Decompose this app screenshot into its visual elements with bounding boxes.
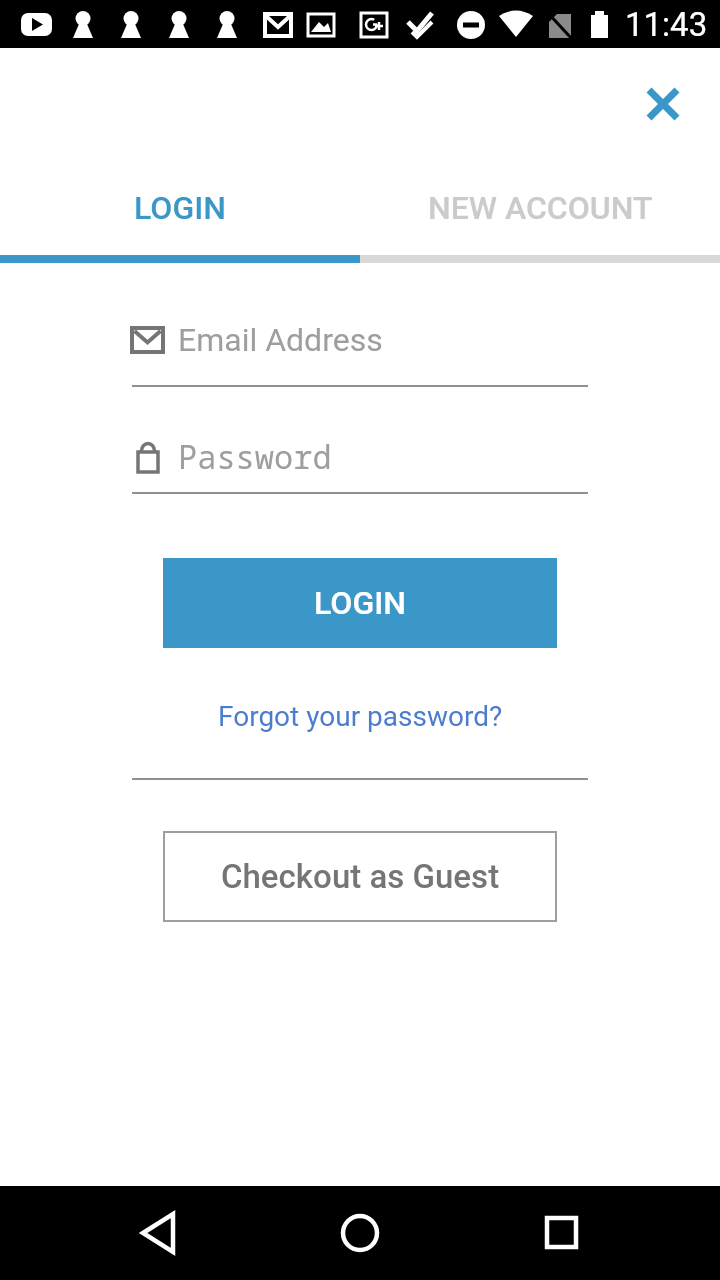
staticText: Email Address (178, 321, 383, 359)
staticText: Checkout as Guest (221, 857, 500, 896)
button[interactable] (310, 1193, 410, 1273)
button[interactable]: NEW ACCOUNT (360, 175, 720, 241)
staticText: Forgot your password? (218, 700, 503, 733)
staticText: LOGIN (314, 584, 406, 622)
button[interactable] (633, 74, 693, 134)
button[interactable]: Checkout as Guest (163, 831, 557, 922)
button[interactable]: LOGIN (0, 175, 360, 241)
staticText: 11:43 (625, 5, 708, 44)
button[interactable]: Email Address (132, 316, 588, 364)
button[interactable]: Password (132, 433, 588, 481)
staticText: LOGIN (134, 189, 226, 227)
button[interactable]: Forgot your password? (160, 694, 560, 738)
button[interactable] (512, 1193, 612, 1273)
button[interactable]: LOGIN (163, 558, 557, 648)
button[interactable] (110, 1193, 210, 1273)
staticText: NEW ACCOUNT (428, 189, 653, 227)
staticText: Password (178, 435, 332, 479)
